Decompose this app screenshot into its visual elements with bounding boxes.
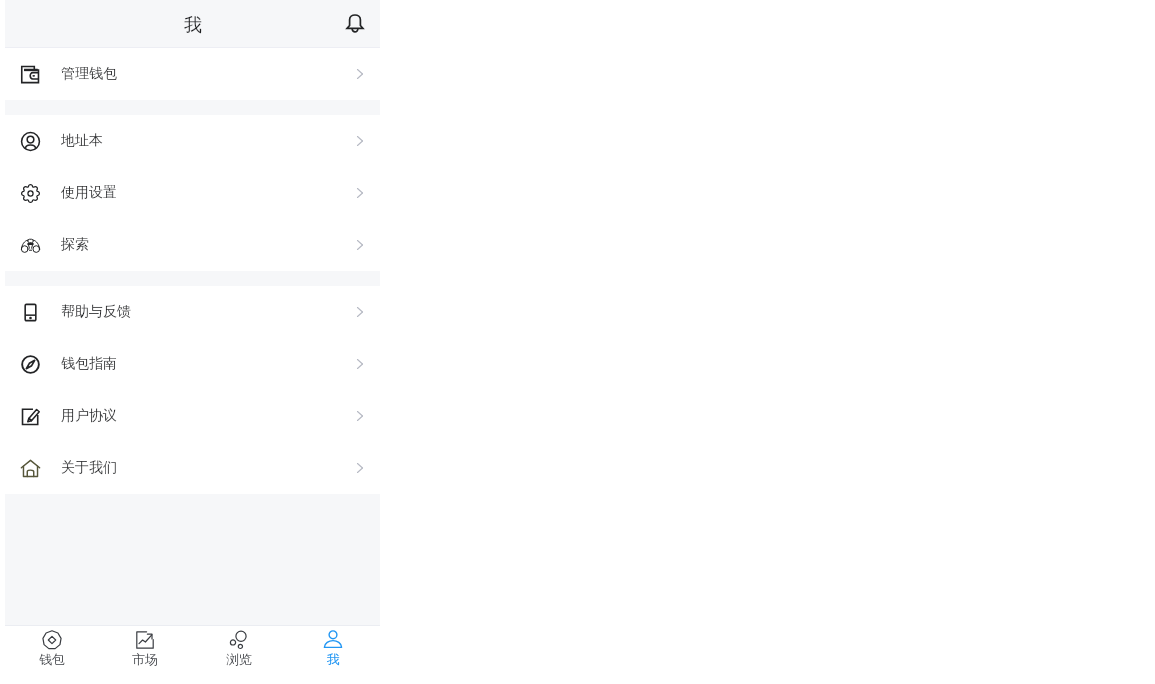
staticText: 帮助与反馈 bbox=[61, 303, 131, 321]
button[interactable]: 钱包指南 bbox=[5, 338, 380, 390]
button[interactable]: 地址本 bbox=[5, 115, 380, 167]
staticText: 关于我们 bbox=[61, 459, 117, 477]
staticText: 用户协议 bbox=[61, 407, 117, 425]
button[interactable]: 我 bbox=[286, 626, 380, 684]
button[interactable]: 使用设置 bbox=[5, 167, 380, 219]
staticText: 钱包指南 bbox=[61, 355, 117, 373]
staticText: 使用设置 bbox=[61, 184, 117, 202]
staticText: 钱包 bbox=[39, 651, 65, 667]
staticText: 我 bbox=[184, 14, 202, 37]
button[interactable]: 浏览 bbox=[192, 626, 286, 684]
staticText: 我 bbox=[327, 651, 340, 667]
button[interactable]: 管理钱包 bbox=[5, 48, 380, 100]
button[interactable]: 市场 bbox=[98, 626, 192, 684]
button[interactable]: 关于我们 bbox=[5, 442, 380, 494]
button[interactable]: Notifications bbox=[336, 3, 374, 41]
staticText: 地址本 bbox=[61, 132, 103, 150]
staticText: 市场 bbox=[132, 651, 158, 667]
staticText: 管理钱包 bbox=[61, 65, 117, 83]
button[interactable]: 探索 bbox=[5, 219, 380, 271]
button[interactable]: 用户协议 bbox=[5, 390, 380, 442]
staticText: 探索 bbox=[61, 236, 89, 254]
button[interactable]: 帮助与反馈 bbox=[5, 286, 380, 338]
button[interactable]: 钱包 bbox=[5, 626, 98, 684]
staticText: 浏览 bbox=[226, 651, 252, 667]
